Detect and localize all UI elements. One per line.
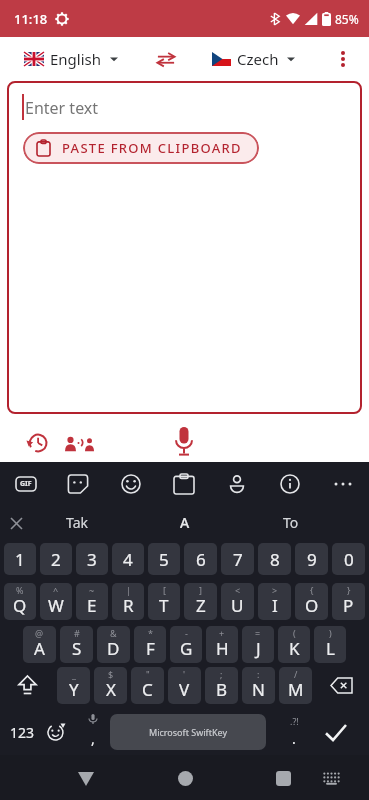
button[interactable]: GIF: [0, 462, 52, 505]
button[interactable]: 8: [258, 543, 291, 575]
staticText: F: [146, 637, 155, 660]
staticText: 6: [196, 548, 206, 571]
staticText: [: [163, 584, 166, 596]
button[interactable]: 1: [4, 543, 36, 575]
button[interactable]: ): [314, 626, 346, 663]
staticText: {: [310, 584, 314, 596]
button[interactable]: [331, 47, 355, 71]
button[interactable]: 123: [10, 723, 35, 742]
button[interactable]: [6, 513, 26, 533]
button[interactable]: [52, 462, 104, 505]
staticText: $: [108, 668, 114, 680]
button[interactable]: Tak: [66, 513, 88, 532]
button[interactable]: [104, 462, 157, 505]
button[interactable]: %: [4, 583, 36, 620]
button[interactable]: }: [332, 583, 365, 620]
button[interactable]: +: [206, 626, 238, 663]
button[interactable]: 9: [295, 543, 328, 575]
button[interactable]: [316, 462, 369, 505]
button[interactable]: /: [279, 667, 312, 704]
button[interactable]: 4: [112, 543, 144, 575]
button[interactable]: >: [258, 583, 291, 620]
staticText: T: [159, 594, 169, 617]
staticText: 5: [159, 548, 169, 571]
staticText: 11:18: [14, 10, 48, 28]
button[interactable]: @: [23, 626, 56, 663]
button[interactable]: 5: [148, 543, 180, 575]
staticText: P: [343, 594, 354, 617]
button[interactable]: =: [242, 626, 274, 663]
button[interactable]: To: [283, 513, 299, 532]
staticText: <: [235, 584, 241, 596]
staticText: V: [179, 678, 190, 701]
button[interactable]: [210, 462, 263, 505]
staticText: ,: [91, 729, 95, 748]
button[interactable]: ': [168, 667, 201, 704]
button[interactable]: -: [170, 626, 202, 663]
staticText: %: [16, 584, 24, 596]
button[interactable]: [26, 432, 48, 454]
button[interactable]: 3: [76, 543, 108, 575]
button[interactable]: Czech: [212, 49, 296, 69]
button[interactable]: _: [57, 667, 90, 704]
button[interactable]: (: [278, 626, 310, 663]
staticText: Z: [196, 594, 206, 617]
button[interactable]: 7: [221, 543, 254, 575]
staticText: .: [292, 729, 296, 748]
staticText: E: [87, 594, 97, 617]
button[interactable]: 2: [40, 543, 72, 575]
button[interactable]: {: [295, 583, 328, 620]
button[interactable]: #: [60, 626, 93, 663]
staticText: GIF: [20, 479, 32, 489]
staticText: .?!: [290, 715, 299, 727]
button[interactable]: [314, 667, 369, 704]
staticText: >: [272, 584, 278, 596]
staticText: (: [293, 627, 296, 639]
staticText: X: [106, 678, 116, 701]
button[interactable]: ]: [184, 583, 217, 620]
button[interactable]: A: [180, 513, 190, 532]
button[interactable]: English: [24, 49, 119, 69]
staticText: 2: [51, 548, 61, 571]
staticText: 8: [270, 548, 280, 571]
staticText: |: [126, 584, 131, 596]
staticText: U: [231, 594, 244, 617]
staticText: ": [146, 668, 150, 680]
button[interactable]: [152, 45, 180, 73]
button[interactable]: [269, 764, 297, 792]
button[interactable]: &: [97, 626, 130, 663]
button[interactable]: $: [94, 667, 127, 704]
button[interactable]: [72, 764, 100, 792]
button[interactable]: |: [112, 583, 144, 620]
button[interactable]: .?!: [284, 712, 304, 752]
button[interactable]: [0, 667, 55, 704]
button[interactable]: [319, 766, 343, 790]
button[interactable]: [171, 764, 199, 792]
staticText: M: [288, 678, 304, 701]
button[interactable]: ,: [84, 712, 102, 752]
button[interactable]: [64, 432, 94, 454]
staticText: 1: [15, 548, 25, 571]
button[interactable]: [44, 721, 66, 743]
button[interactable]: [263, 462, 316, 505]
button[interactable]: ": [131, 667, 164, 704]
button[interactable]: [: [148, 583, 180, 620]
staticText: &: [110, 627, 117, 639]
button[interactable]: <: [221, 583, 254, 620]
button[interactable]: :: [242, 667, 275, 704]
button[interactable]: *: [134, 626, 166, 663]
button[interactable]: ;: [205, 667, 238, 704]
button[interactable]: 6: [184, 543, 217, 575]
button[interactable]: 0: [332, 543, 365, 575]
staticText: Enter text: [25, 97, 99, 119]
button[interactable]: PASTE FROM CLIPBOARD: [23, 132, 259, 164]
button[interactable]: [157, 462, 210, 505]
button[interactable]: ~: [76, 583, 108, 620]
button[interactable]: [321, 717, 351, 747]
staticText: C: [142, 678, 153, 701]
staticText: *: [148, 627, 153, 639]
button[interactable]: [172, 427, 196, 457]
staticText: -: [185, 627, 188, 639]
button[interactable]: ^: [40, 583, 72, 620]
button[interactable]: Microsoft SwiftKey: [110, 714, 266, 750]
